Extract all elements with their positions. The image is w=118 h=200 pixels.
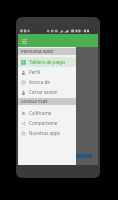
staticText: GOOGLE PLAY [21, 99, 76, 104]
button[interactable]: Califícame [18, 108, 76, 118]
button[interactable]: Compárteme [18, 118, 76, 128]
staticText: PREGUNTA WIMI [21, 49, 76, 54]
button[interactable]: Nuestras apps [18, 128, 76, 138]
button[interactable]: Tablero de juego [18, 57, 76, 67]
button[interactable]: Open navigation drawer [21, 38, 28, 45]
staticText: Compárteme [29, 120, 58, 126]
staticText: Acerca de [29, 79, 50, 85]
button[interactable]: Perfil [18, 67, 76, 77]
staticText: Tablero de juego [29, 59, 65, 65]
button[interactable]: Cerrar sesión [18, 87, 76, 97]
staticText: Cerrar sesión [29, 89, 58, 95]
staticText: Nuestras apps [29, 130, 60, 136]
staticText: Perfil [29, 69, 41, 75]
button[interactable]: Acerca de [18, 77, 76, 87]
staticText: Califícame [29, 110, 52, 116]
